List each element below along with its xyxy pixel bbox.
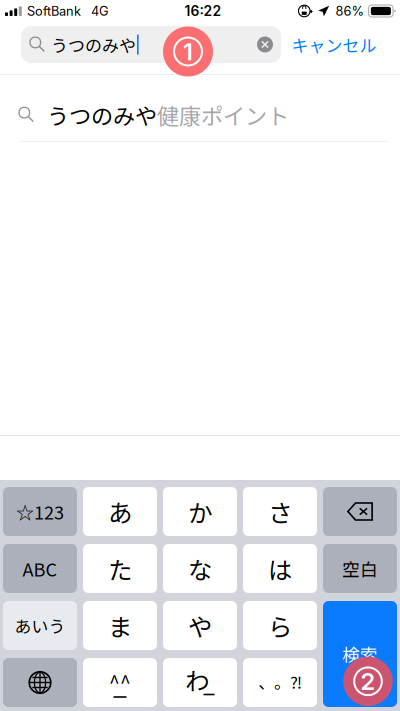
button[interactable]: ABC (3, 544, 77, 593)
button[interactable]: ^^ (83, 658, 157, 707)
staticText: 2 (360, 667, 375, 696)
button[interactable]: あ (83, 487, 157, 536)
staticText: あ (108, 494, 132, 529)
staticText: うつのみや (51, 32, 136, 57)
button[interactable]: ま (83, 601, 157, 650)
staticText: は (268, 551, 292, 586)
button[interactable]: か (163, 487, 237, 536)
staticText: 86% (336, 3, 365, 19)
button[interactable]: な (163, 544, 237, 593)
button[interactable]: 、。?! (243, 658, 317, 707)
button[interactable]: うつのみや (0, 81, 400, 148)
staticText: キャンセル (291, 32, 376, 57)
staticText: 4G (91, 3, 109, 19)
staticText: わ (185, 662, 209, 697)
button[interactable]: キャンセル (288, 26, 380, 63)
staticText: ま (108, 608, 132, 643)
staticText: や (188, 608, 212, 643)
button[interactable]: ☆123 (3, 487, 77, 536)
button[interactable]: ら (243, 601, 317, 650)
staticText: 16:22 (184, 3, 221, 19)
staticText: SoftBank (27, 3, 81, 19)
button[interactable]: 検索 (323, 601, 397, 707)
staticText: 空白 (342, 556, 378, 581)
staticText: さ (268, 494, 292, 529)
button[interactable]: さ (243, 487, 317, 536)
button[interactable]: や (163, 601, 237, 650)
button[interactable]: は (243, 544, 317, 593)
staticText: ^^ (109, 667, 131, 695)
staticText: うつのみや (47, 99, 157, 131)
button[interactable]: 空白 (323, 544, 397, 593)
button[interactable]: Delete (323, 487, 397, 536)
staticText: ☆123 (16, 498, 64, 525)
button[interactable]: わ (163, 658, 237, 707)
staticText: 健康ポイント (157, 99, 289, 131)
staticText: 、。?! (258, 669, 302, 694)
staticText: あいう (14, 613, 65, 638)
staticText: な (188, 551, 212, 586)
button[interactable]: Switch keyboard (3, 658, 77, 707)
staticText: か (188, 494, 212, 529)
button[interactable]: あいう (3, 601, 77, 650)
staticText: 検索 (342, 641, 378, 667)
staticText: 1 (183, 37, 193, 66)
staticText: ら (268, 608, 292, 643)
staticText: ABC (22, 555, 57, 582)
staticText: た (108, 551, 132, 586)
button[interactable]: Clear text (250, 26, 280, 63)
button[interactable]: た (83, 544, 157, 593)
